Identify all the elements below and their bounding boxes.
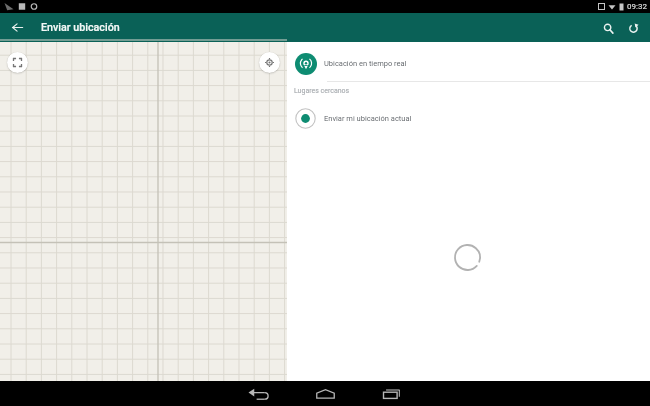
button[interactable]: Ubicación en tiempo real xyxy=(287,42,650,85)
button[interactable]: Search xyxy=(596,16,620,40)
button[interactable]: Home xyxy=(313,381,338,406)
button[interactable]: Back xyxy=(7,17,28,38)
button[interactable]: Refresh xyxy=(621,16,645,40)
staticText: Lugares cercanos xyxy=(294,87,350,95)
staticText: Ubicación en tiempo real xyxy=(324,59,407,68)
button[interactable]: Recents xyxy=(379,381,404,406)
staticText: 09:32 xyxy=(627,2,647,11)
button[interactable]: Enviar mi ubicación actual xyxy=(287,105,650,131)
button[interactable]: Expand map xyxy=(7,52,28,73)
staticText: Enviar ubicación xyxy=(41,21,120,34)
button[interactable]: My location xyxy=(259,52,280,73)
button[interactable]: Back xyxy=(247,381,272,406)
staticText: Enviar mi ubicación actual xyxy=(324,114,412,123)
